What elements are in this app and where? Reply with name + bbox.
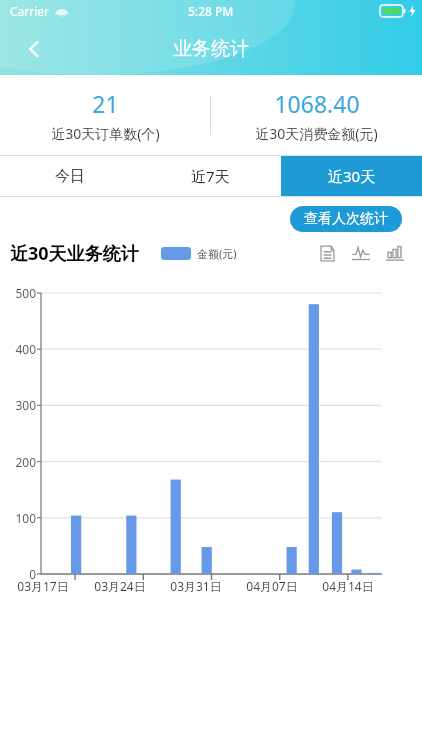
- staticText: 04月14日: [322, 578, 374, 594]
- staticText: 近30天业务统计: [10, 241, 139, 266]
- staticText: 03月24日: [94, 578, 146, 594]
- staticText: 业务统计: [173, 37, 249, 61]
- staticText: 近7天: [191, 166, 230, 186]
- button[interactable]: 近30天: [281, 156, 422, 196]
- staticText: 400: [15, 341, 36, 357]
- staticText: 100: [15, 510, 36, 526]
- staticText: 03月17日: [17, 578, 69, 594]
- staticText: 金额(元): [197, 246, 237, 261]
- staticText: 500: [15, 285, 36, 301]
- button[interactable]: 查看人次统计: [290, 206, 402, 232]
- button[interactable]: 近7天: [140, 156, 281, 196]
- staticText: 近30天: [328, 166, 376, 186]
- staticText: 200: [15, 454, 36, 470]
- button[interactable]: Bar chart: [382, 240, 408, 266]
- staticText: 0: [29, 566, 36, 582]
- staticText: 近30天消费金额(元): [255, 124, 378, 143]
- staticText: 查看人次统计: [304, 210, 388, 228]
- staticText: 03月31日: [170, 578, 222, 594]
- button[interactable]: 今日: [0, 156, 140, 196]
- staticText: Carrier: [10, 3, 50, 19]
- button[interactable]: 1068.40: [211, 88, 422, 143]
- staticText: 今日: [55, 167, 85, 186]
- staticText: 1068.40: [274, 88, 360, 119]
- button[interactable]: 21: [0, 88, 210, 143]
- staticText: 21: [92, 88, 119, 119]
- staticText: 04月07日: [246, 578, 298, 594]
- staticText: 近30天订单数(个): [51, 124, 160, 143]
- button[interactable]: Report list: [314, 240, 340, 266]
- button[interactable]: Line chart: [348, 240, 374, 266]
- button[interactable]: Back: [12, 27, 56, 71]
- staticText: 300: [15, 397, 36, 413]
- staticText: 5:28 PM: [188, 3, 234, 19]
